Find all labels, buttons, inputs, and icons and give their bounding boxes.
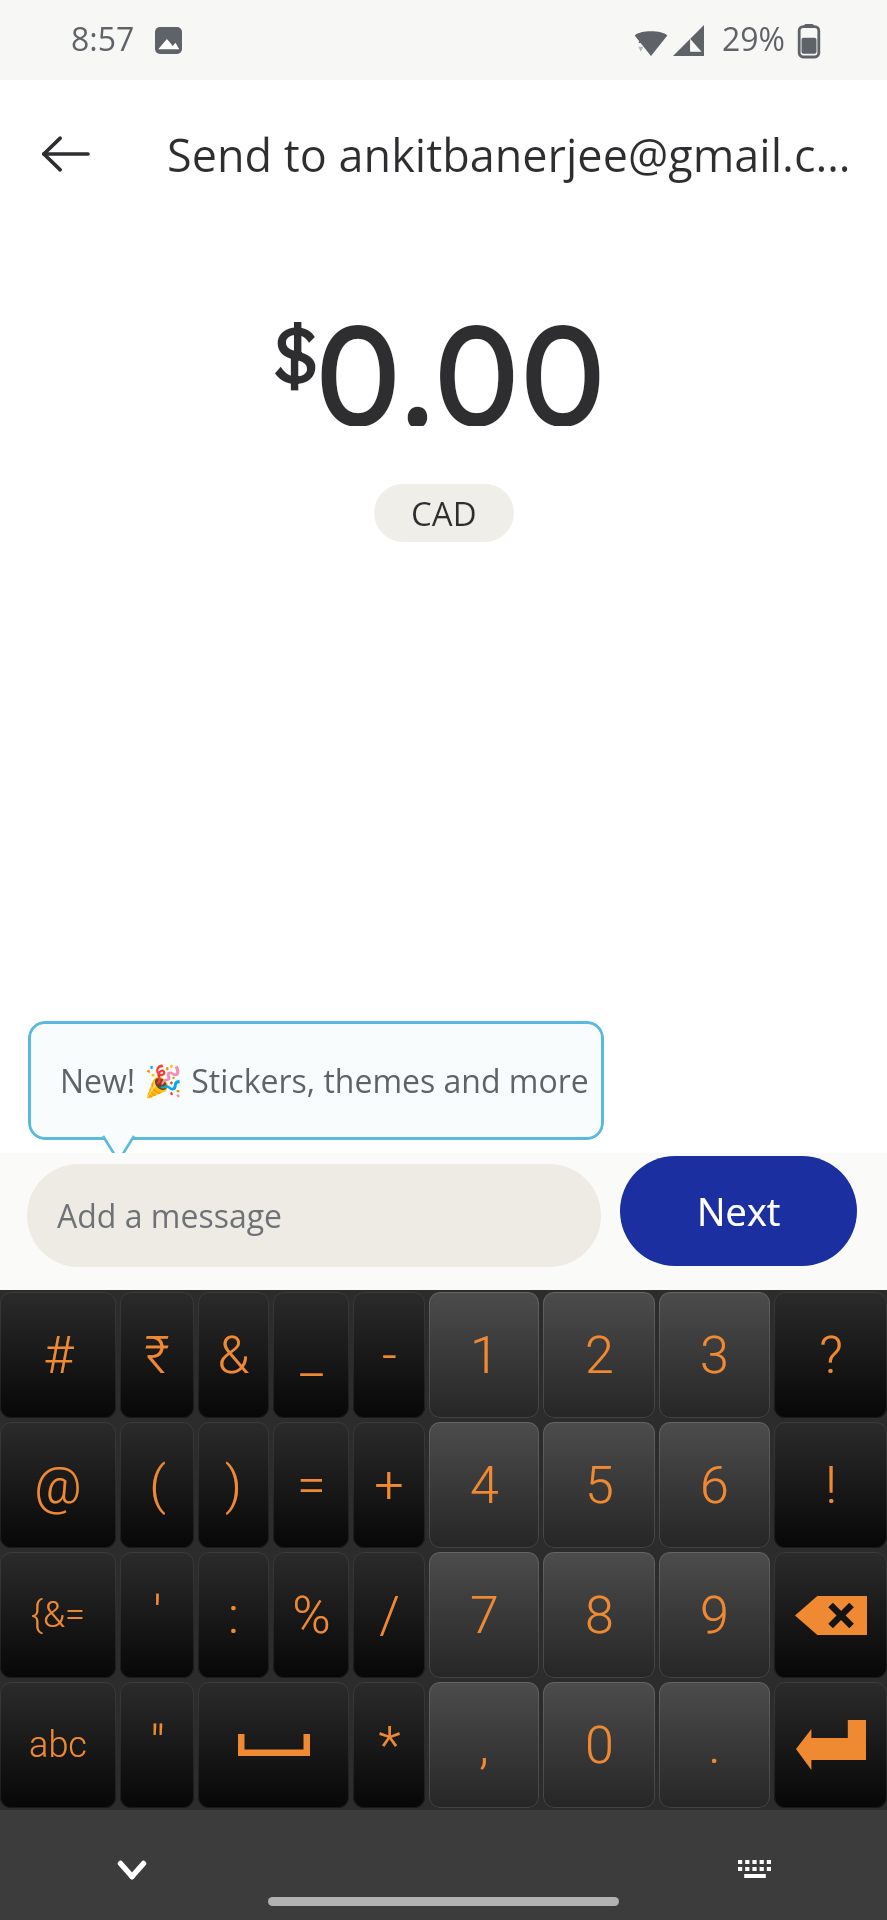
button[interactable]: 0 <box>543 1682 655 1808</box>
staticText: CAD <box>411 491 477 536</box>
staticText: & <box>217 1325 250 1386</box>
staticText: Add a message <box>57 1194 283 1238</box>
button[interactable]: Next <box>620 1156 857 1266</box>
staticText: ? <box>819 1325 843 1386</box>
staticText: = <box>297 1455 326 1516</box>
staticText: / <box>379 1585 400 1646</box>
staticText: $ <box>271 305 320 403</box>
button[interactable]: Change keyboard <box>719 1833 791 1905</box>
staticText: 3 <box>700 1325 729 1386</box>
button[interactable]: 2 <box>543 1292 655 1418</box>
button[interactable]: = <box>273 1422 349 1548</box>
staticText: 6 <box>700 1455 729 1516</box>
staticText: 0 <box>585 1715 614 1776</box>
staticText: 8:57 <box>71 17 135 61</box>
staticText: Next <box>697 1185 781 1237</box>
button[interactable]: 4 <box>429 1422 539 1548</box>
button[interactable]: # <box>0 1292 116 1418</box>
button[interactable]: _ <box>273 1292 349 1418</box>
staticText: * <box>378 1715 401 1776</box>
button[interactable]: + <box>353 1422 425 1548</box>
button[interactable]: & <box>198 1292 269 1418</box>
staticText: 1 <box>470 1325 499 1386</box>
button[interactable]: - <box>353 1292 425 1418</box>
button[interactable]: , <box>429 1682 539 1808</box>
button[interactable]: 6 <box>659 1422 770 1548</box>
staticText: 29% <box>722 17 786 61</box>
button[interactable]: Space <box>198 1682 349 1808</box>
button[interactable]: ! <box>774 1422 887 1548</box>
button[interactable]: {&= <box>0 1552 116 1678</box>
staticText: 7 <box>470 1585 499 1646</box>
staticText: ' <box>153 1585 162 1646</box>
button[interactable]: Back <box>22 111 108 197</box>
staticText: 0.00 <box>315 284 606 426</box>
staticText: ( <box>149 1455 166 1516</box>
staticText: 9 <box>700 1585 729 1646</box>
staticText: @ <box>34 1455 82 1516</box>
button[interactable]: @ <box>0 1422 116 1548</box>
staticText: Send to ankitbanerjee@gmail.c… <box>167 124 851 185</box>
staticText: , <box>479 1715 489 1776</box>
staticText: # <box>43 1325 74 1386</box>
staticText: ) <box>225 1455 242 1516</box>
button[interactable]: Hide keyboard <box>96 1834 168 1906</box>
button[interactable]: ( <box>120 1422 194 1548</box>
button[interactable]: 3 <box>659 1292 770 1418</box>
staticText: + <box>374 1455 404 1516</box>
staticText: 2 <box>585 1325 614 1386</box>
button[interactable]: ₹ <box>120 1292 194 1418</box>
button[interactable]: 5 <box>543 1422 655 1548</box>
button[interactable]: abc <box>0 1682 116 1808</box>
button[interactable]: . <box>659 1682 770 1808</box>
button[interactable]: Enter <box>774 1682 887 1808</box>
button[interactable]: / <box>353 1552 425 1678</box>
button[interactable]: 9 <box>659 1552 770 1678</box>
staticText: {&= <box>31 1594 85 1636</box>
button[interactable]: CAD <box>374 484 514 542</box>
button[interactable]: % <box>273 1552 349 1678</box>
button[interactable]: 7 <box>429 1552 539 1678</box>
button[interactable]: : <box>198 1552 269 1678</box>
staticText: ₹ <box>144 1325 170 1386</box>
staticText: 5 <box>585 1455 614 1516</box>
staticText: % <box>292 1585 331 1646</box>
button[interactable]: * <box>353 1682 425 1808</box>
staticText: - <box>382 1325 397 1386</box>
staticText: 4 <box>470 1455 499 1516</box>
button[interactable]: Add a message <box>27 1164 601 1267</box>
staticText: _ <box>300 1325 323 1386</box>
button[interactable]: New! <box>28 1021 604 1140</box>
button[interactable]: Backspace <box>774 1552 887 1678</box>
staticText: 🎉 <box>144 1063 183 1099</box>
staticText: " <box>150 1715 165 1776</box>
button[interactable]: " <box>120 1682 194 1808</box>
button[interactable]: ' <box>120 1552 194 1678</box>
staticText: ! <box>825 1455 837 1516</box>
button[interactable]: ? <box>774 1292 887 1418</box>
button[interactable]: 8 <box>543 1552 655 1678</box>
button[interactable]: 1 <box>429 1292 539 1418</box>
staticText: Stickers, themes and more <box>183 1059 589 1103</box>
staticText: : <box>228 1585 239 1646</box>
staticText: abc <box>29 1724 87 1766</box>
staticText: . <box>708 1715 721 1776</box>
staticText: New! <box>60 1059 144 1103</box>
button[interactable]: ) <box>198 1422 269 1548</box>
staticText: 8 <box>585 1585 614 1646</box>
